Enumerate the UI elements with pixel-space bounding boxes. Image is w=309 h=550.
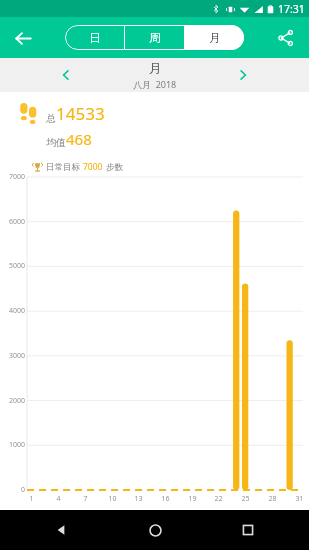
staticText: 周	[149, 31, 161, 45]
staticText: 7	[83, 494, 88, 504]
button[interactable]: Previous	[52, 61, 80, 89]
staticText: 日	[89, 31, 101, 45]
staticText: 6000	[8, 217, 25, 227]
staticText: 1	[29, 494, 34, 504]
staticText: 13	[134, 494, 143, 504]
button[interactable]: Back	[44, 513, 78, 547]
staticText: 10	[108, 494, 117, 504]
staticText: 总	[46, 112, 56, 125]
button[interactable]: Share	[269, 21, 303, 55]
staticText: 4000	[8, 306, 25, 316]
button[interactable]: Back	[6, 21, 40, 55]
staticText: 均值	[46, 136, 66, 149]
staticText: 28	[268, 494, 277, 504]
staticText: 7000	[83, 161, 103, 173]
staticText: 月	[149, 61, 162, 77]
button[interactable]: 月	[185, 25, 244, 50]
button[interactable]: Home	[138, 513, 172, 547]
staticText: 25	[241, 494, 250, 504]
staticText: 468	[66, 129, 92, 149]
staticText: 22	[214, 494, 223, 504]
staticText: 3000	[8, 351, 25, 361]
staticText: 5000	[8, 261, 25, 271]
staticText: 八月 2018	[133, 78, 177, 90]
staticText: 日常目标	[46, 162, 80, 173]
staticText: 7000	[8, 172, 25, 182]
button[interactable]: 日	[65, 25, 124, 50]
staticText: 4	[56, 494, 61, 504]
staticText: 月	[209, 31, 221, 45]
staticText: 步数	[106, 162, 123, 173]
staticText: 2000	[8, 396, 25, 406]
button[interactable]: Next	[229, 61, 257, 89]
staticText: 17:31	[278, 2, 305, 16]
staticText: 31	[295, 494, 304, 504]
staticText: 16	[161, 494, 170, 504]
staticText: 19	[188, 494, 197, 504]
button[interactable]: 周	[125, 25, 184, 50]
staticText: 1000	[8, 440, 25, 450]
staticText: 0	[20, 485, 25, 495]
staticText: 14533	[56, 102, 105, 125]
button[interactable]: Recents	[231, 513, 265, 547]
